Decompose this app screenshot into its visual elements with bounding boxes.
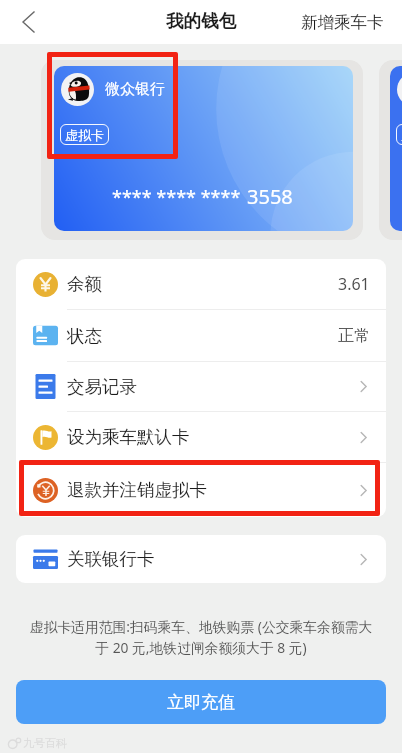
staticText: 虚拟卡: [65, 127, 104, 143]
button[interactable]: 关联银行卡: [16, 535, 386, 583]
button[interactable]: 状态: [16, 310, 386, 361]
staticText: 正常: [338, 326, 370, 346]
button[interactable]: Back: [8, 2, 48, 42]
button[interactable]: 立即充值: [16, 680, 386, 724]
staticText: 新增乘车卡: [301, 12, 384, 33]
staticText: **** **** ****: [112, 185, 241, 210]
staticText: 设为乘车默认卡: [67, 426, 190, 448]
staticText: 关联银行卡: [67, 548, 155, 570]
staticText: 虚拟卡: [401, 127, 402, 143]
staticText: 虚拟卡适用范围:扫码乘车、地铁购票 (公交乘车余额需大 于 20 元,地铁过闸余…: [11, 617, 391, 657]
staticText: 立即充值: [167, 692, 235, 713]
staticText: 3558: [247, 183, 293, 210]
button[interactable]: 微众银行: [54, 66, 353, 231]
staticText: 余额: [67, 273, 102, 295]
staticText: 状态: [67, 325, 102, 347]
button[interactable]: 退款并注销虚拟卡: [16, 463, 386, 517]
staticText: 微众银行: [105, 80, 165, 99]
staticText: 3.61: [338, 273, 370, 295]
staticText: 九号百科: [23, 736, 67, 750]
staticText: 交易记录: [67, 376, 137, 398]
button[interactable]: 设为乘车默认卡: [16, 412, 386, 462]
staticText: 我的钱包: [166, 10, 236, 32]
staticText: 退款并注销虚拟卡: [67, 479, 207, 501]
button[interactable]: 交易记录: [16, 362, 386, 411]
button[interactable]: 余额: [16, 259, 386, 309]
button[interactable]: 新增乘车卡: [297, 4, 388, 41]
